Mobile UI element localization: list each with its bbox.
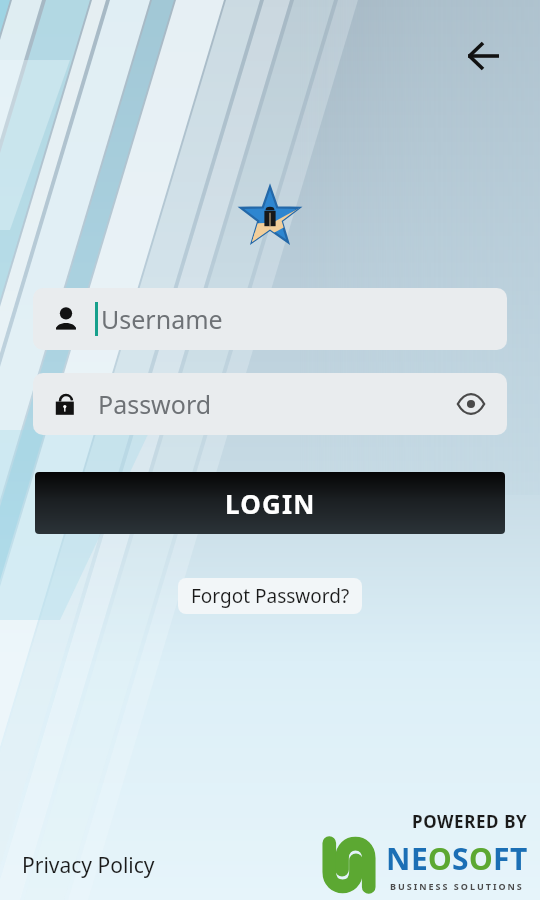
staticText: T xyxy=(510,838,528,879)
staticText: F xyxy=(493,838,510,879)
button[interactable]: Username xyxy=(33,288,507,350)
button[interactable]: LOGIN xyxy=(35,472,505,534)
staticText: E xyxy=(411,838,428,879)
staticText: O xyxy=(428,838,452,879)
staticText: Username xyxy=(101,302,223,336)
staticText: O xyxy=(469,838,493,879)
staticText: BUSINESS SOLUTIONS xyxy=(390,880,524,892)
staticText: Forgot Password? xyxy=(191,583,350,609)
staticText: Password xyxy=(98,387,212,421)
staticText: N xyxy=(386,838,411,879)
button[interactable]: Back xyxy=(452,25,514,87)
staticText: LOGIN xyxy=(225,486,316,521)
button[interactable]: Forgot Password? xyxy=(178,578,362,614)
button[interactable]: Privacy Policy xyxy=(12,846,165,884)
staticText: POWERED BY xyxy=(412,810,528,833)
staticText: Privacy Policy xyxy=(22,851,155,880)
button[interactable]: Password xyxy=(33,373,507,435)
button[interactable]: Show password xyxy=(451,384,491,424)
staticText: S xyxy=(452,838,469,879)
